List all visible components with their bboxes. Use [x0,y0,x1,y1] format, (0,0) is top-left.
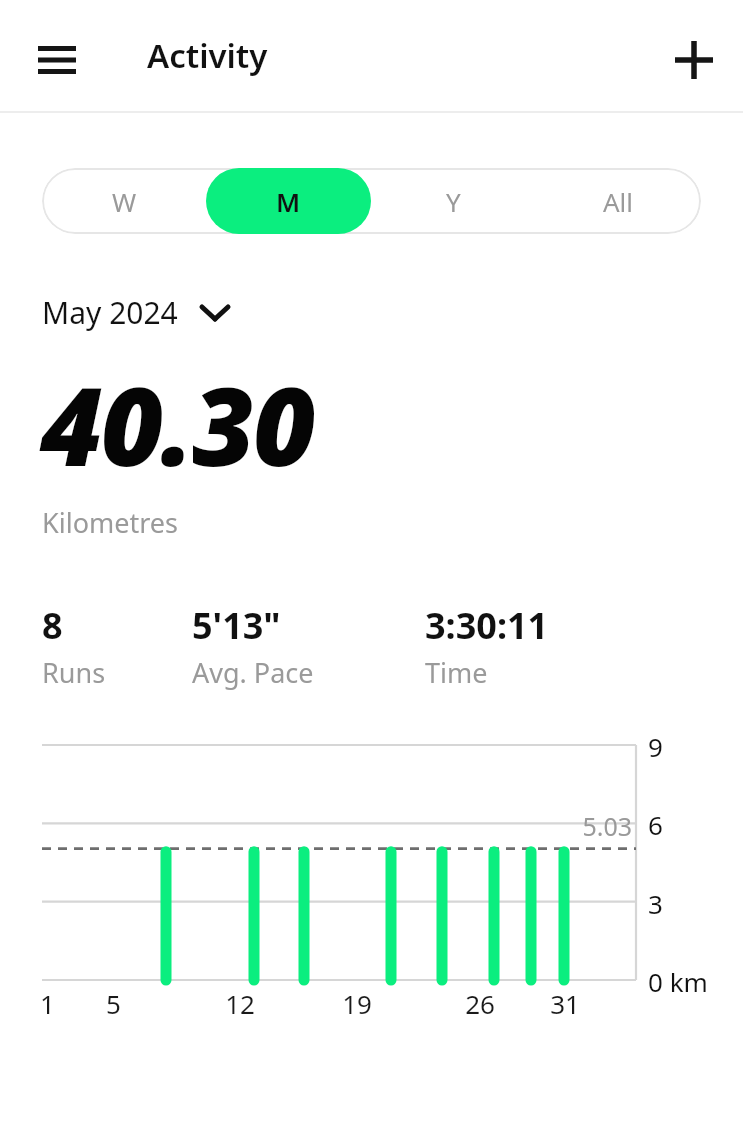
staticText: 12 [225,986,255,1021]
button[interactable]: May 2024 [42,292,230,333]
staticText: Activity [147,33,268,78]
button[interactable]: W [42,168,206,234]
staticText: Kilometres [42,504,178,541]
button[interactable]: Add activity [665,31,723,89]
staticText: 6 [648,807,663,842]
staticText: 3:30:11 [425,601,549,650]
staticText: 19 [342,986,372,1021]
button[interactable]: M [206,168,371,234]
staticText: Avg. Pace [192,654,314,691]
staticText: W [112,184,137,219]
staticText: 0 km [648,964,708,999]
staticText: 5'13" [192,601,281,650]
staticText: 9 [648,729,663,764]
staticText: Runs [42,654,106,691]
staticText: Y [446,184,461,219]
staticText: 5.03 [582,809,632,843]
staticText: 5 [106,986,121,1021]
staticText: 1 [40,986,55,1021]
staticText: 8 [42,601,63,650]
staticText: 3 [648,886,663,921]
button[interactable]: Y [371,168,536,234]
staticText: 31 [550,986,580,1021]
staticText: M [276,184,301,219]
staticText: Time [425,654,488,691]
staticText: All [603,184,634,219]
staticText: May 2024 [42,292,178,333]
button[interactable]: All [536,168,701,234]
button[interactable]: Menu [28,31,86,89]
staticText: 40.30 [40,351,314,498]
staticText: 26 [465,986,495,1021]
